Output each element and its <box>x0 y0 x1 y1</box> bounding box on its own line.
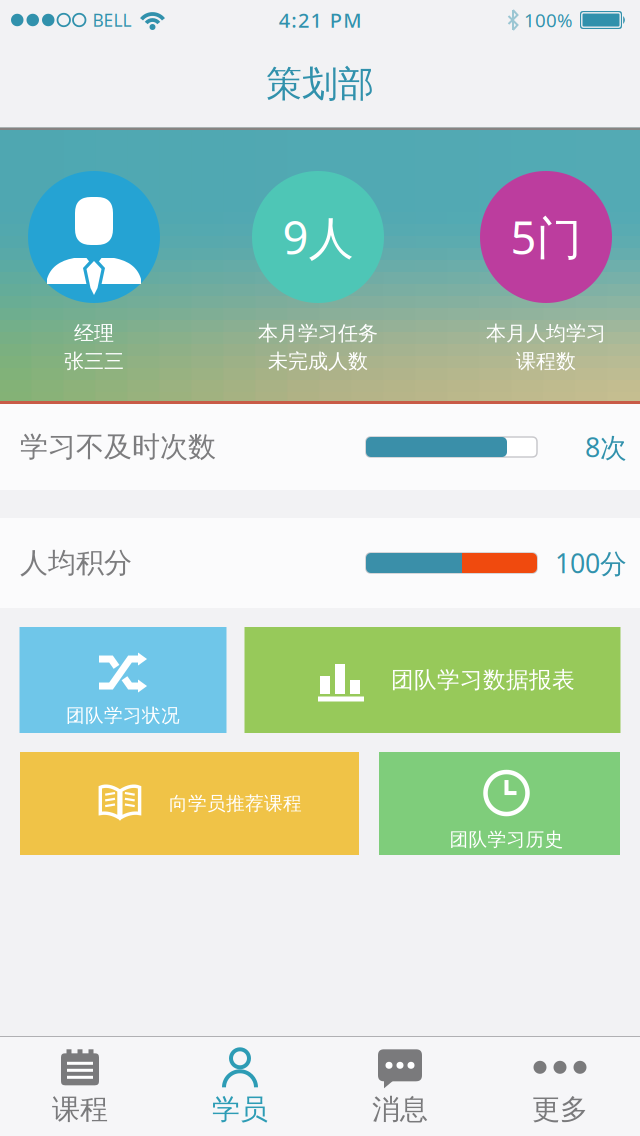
button[interactable]: 更多 <box>480 1038 640 1134</box>
button[interactable]: 团队学习数据报表 <box>244 627 620 733</box>
staticText: 经理 <box>74 321 114 346</box>
staticText: 8次 <box>585 429 627 465</box>
staticText: 策划部 <box>266 62 374 106</box>
button[interactable]: 向学员推荐课程 <box>20 752 359 855</box>
staticText: 更多 <box>532 1092 588 1127</box>
staticText: 本月学习任务 <box>258 321 378 346</box>
staticText: 团队学习状况 <box>66 704 180 727</box>
staticText: 本月人均学习 <box>486 321 606 346</box>
staticText: 未完成人数 <box>268 349 368 374</box>
button[interactable]: 课程 <box>0 1038 160 1134</box>
button[interactable]: 消息 <box>320 1038 480 1134</box>
staticText: 4:21 PM <box>279 7 361 33</box>
staticText: 5门 <box>510 207 581 267</box>
staticText: BELL <box>92 8 131 31</box>
button[interactable]: 学习不及时次数 <box>0 404 640 490</box>
staticText: 9人 <box>282 207 353 267</box>
staticText: 100分 <box>555 545 627 581</box>
staticText: 张三三 <box>64 349 124 374</box>
button[interactable]: 人均积分 <box>0 518 640 608</box>
staticText: 课程数 <box>516 349 576 374</box>
staticText: 向学员推荐课程 <box>169 792 302 815</box>
staticText: 课程 <box>52 1092 108 1127</box>
staticText: 人均积分 <box>20 546 132 580</box>
staticText: 团队学习历史 <box>449 828 563 851</box>
staticText: 学习不及时次数 <box>20 430 216 464</box>
staticText: 100% <box>524 8 573 32</box>
button[interactable]: 团队学习历史 <box>379 752 620 855</box>
staticText: 学员 <box>212 1092 268 1127</box>
button[interactable]: 学员 <box>160 1038 320 1134</box>
staticText: 团队学习数据报表 <box>391 666 575 694</box>
button[interactable]: 团队学习状况 <box>19 627 226 733</box>
staticText: 消息 <box>372 1092 428 1127</box>
